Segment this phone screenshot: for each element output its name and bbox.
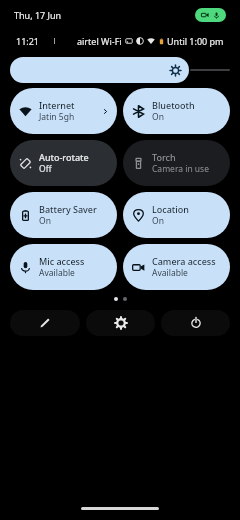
staticText: Bluetooth (152, 99, 195, 111)
button[interactable]: Camera access (123, 244, 230, 290)
staticText: On (39, 215, 51, 227)
staticText: Auto-rotate (39, 151, 89, 163)
button[interactable]: Location (123, 192, 230, 238)
staticText: Location (152, 203, 189, 215)
staticText: Until 1:00 pm (167, 35, 224, 47)
staticText: Mic access (39, 255, 85, 267)
staticText: On (152, 111, 164, 123)
button[interactable]: Mic access (10, 244, 117, 290)
staticText: Thu, 17 Jun (14, 9, 62, 21)
staticText: Battery Saver (39, 203, 97, 215)
staticText: 11:21 (16, 35, 40, 47)
button[interactable]: Battery Saver (10, 192, 117, 238)
staticText: Available (152, 267, 188, 279)
button[interactable]: Torch (123, 140, 230, 186)
button[interactable]: Camera and microphone in use (195, 8, 226, 22)
staticText: Jatin 5gh (39, 111, 75, 123)
button[interactable]: Power (161, 310, 230, 336)
staticText: Available (39, 267, 75, 279)
staticText: Internet (39, 99, 75, 111)
button[interactable]: Brightness (10, 57, 230, 83)
staticText: Camera access (152, 255, 216, 267)
button[interactable]: Internet (10, 88, 117, 134)
button[interactable]: Edit tiles (10, 310, 80, 336)
staticText: Off (39, 163, 52, 175)
staticText: airtel Wi-Fi (77, 35, 122, 47)
button[interactable]: Auto-rotate (10, 140, 117, 186)
staticText: Camera in use (152, 163, 209, 175)
button[interactable]: Settings (86, 310, 155, 336)
staticText: Torch (152, 151, 176, 163)
staticText: On (152, 215, 164, 227)
button[interactable]: Bluetooth (123, 88, 230, 134)
